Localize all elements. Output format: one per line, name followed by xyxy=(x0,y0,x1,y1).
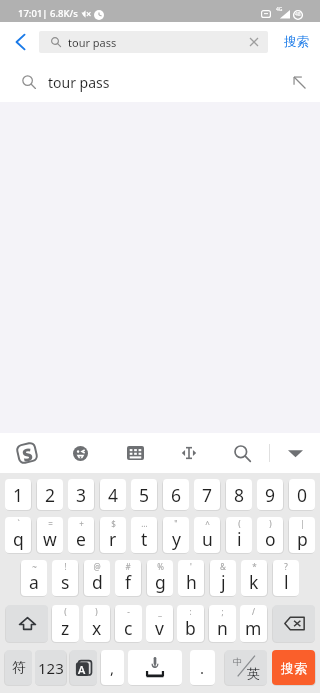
button[interactable]: Switch layout xyxy=(70,650,97,685)
button[interactable]: . xyxy=(190,650,215,685)
button[interactable]: ~ xyxy=(21,560,47,596)
button[interactable]: Keyboard layout xyxy=(117,433,153,473)
staticText: 符 xyxy=(12,659,26,676)
button[interactable]: $ xyxy=(100,517,126,553)
button[interactable]: = xyxy=(37,517,63,553)
button[interactable]: 2 xyxy=(37,479,63,510)
staticText: o xyxy=(265,527,276,551)
button[interactable]: tour pass xyxy=(39,31,268,53)
staticText: ! xyxy=(64,561,67,572)
button[interactable]: * xyxy=(241,560,267,596)
staticText: ) xyxy=(269,518,272,529)
button[interactable]: ( xyxy=(226,517,252,553)
staticText: 4 xyxy=(108,483,119,507)
button[interactable]: % xyxy=(147,560,173,596)
button[interactable]: 3 xyxy=(68,479,94,510)
staticText: 2 xyxy=(45,483,56,507)
button[interactable]: Hide keyboard xyxy=(277,433,313,473)
button[interactable]: ( xyxy=(52,605,79,642)
button[interactable]: Emoji xyxy=(62,433,98,473)
button[interactable]: Back xyxy=(2,22,38,62)
button[interactable]: 8 xyxy=(226,479,252,510)
button[interactable]: tour pass xyxy=(0,62,320,102)
button[interactable]: 0 xyxy=(289,479,315,510)
staticText: w xyxy=(43,527,57,551)
staticText: ' xyxy=(190,561,192,572)
button[interactable]: : xyxy=(177,605,204,642)
button[interactable]: - xyxy=(115,605,142,642)
button[interactable]: Clear xyxy=(244,32,264,52)
staticText: 123 xyxy=(38,658,64,678)
button[interactable]: Symbols xyxy=(5,650,32,685)
button[interactable]: 搜索 xyxy=(272,650,315,685)
staticText: tour pass xyxy=(48,73,110,92)
button[interactable]: Search xyxy=(224,433,260,473)
button[interactable]: / xyxy=(240,605,267,642)
button[interactable]: @ xyxy=(84,560,110,596)
button[interactable]: 搜索 xyxy=(272,22,320,62)
button[interactable]: & xyxy=(210,560,236,596)
staticText: ^ xyxy=(205,518,210,529)
staticText: % xyxy=(157,561,164,572)
button[interactable]: … xyxy=(131,517,157,553)
staticText: * xyxy=(252,561,257,572)
staticText: d xyxy=(92,570,103,594)
staticText: l xyxy=(284,570,289,594)
staticText: / xyxy=(252,606,255,617)
staticText: A xyxy=(78,662,86,677)
button[interactable]: ^ xyxy=(194,517,220,553)
button[interactable]: ! xyxy=(52,560,78,596)
staticText: x xyxy=(92,616,102,640)
button[interactable]: Numbers xyxy=(35,650,66,685)
button[interactable]: 6 xyxy=(163,479,189,510)
button[interactable]: ? xyxy=(273,560,299,596)
staticText: 5 xyxy=(139,483,150,507)
staticText: 6 xyxy=(171,483,182,507)
staticText: 搜索 xyxy=(281,660,307,676)
staticText: ( xyxy=(64,606,67,617)
button[interactable]: Chinese English xyxy=(225,650,267,685)
button[interactable]: , xyxy=(101,650,124,685)
staticText: $ xyxy=(111,518,116,529)
staticText: 17:01| 6.8K/s xyxy=(18,7,78,20)
staticText: h xyxy=(186,570,197,594)
staticText: y xyxy=(172,527,181,551)
staticText: ? xyxy=(284,561,288,572)
button[interactable]: ) xyxy=(83,605,110,642)
staticText: 0 xyxy=(297,483,308,507)
staticText: 8 xyxy=(234,483,245,507)
staticText: m xyxy=(245,616,262,640)
staticText: 48 xyxy=(295,11,301,18)
staticText: p xyxy=(297,527,308,551)
staticText: + xyxy=(79,518,84,529)
button[interactable]: Fill search box xyxy=(286,69,312,95)
button[interactable]: 1 xyxy=(5,479,31,510)
button[interactable]: Sogou input xyxy=(9,433,45,473)
staticText: 7 xyxy=(202,483,213,507)
button[interactable]: # xyxy=(115,560,141,596)
staticText: 中 xyxy=(233,656,242,667)
button[interactable]: Space xyxy=(128,650,182,685)
button[interactable]: 9 xyxy=(257,479,283,510)
button[interactable]: ' xyxy=(178,560,204,596)
button[interactable]: _ xyxy=(146,605,173,642)
button[interactable]: " xyxy=(163,517,189,553)
button[interactable]: Move cursor xyxy=(171,433,207,473)
button[interactable]: | xyxy=(289,517,315,553)
button[interactable]: + xyxy=(68,517,94,553)
staticText: c xyxy=(124,616,133,640)
staticText: n xyxy=(217,616,228,640)
staticText: k xyxy=(249,570,259,594)
staticText: - xyxy=(127,606,130,617)
button[interactable]: ) xyxy=(257,517,283,553)
button[interactable]: ` xyxy=(5,517,31,553)
button[interactable]: Shift xyxy=(6,605,48,642)
button[interactable]: 7 xyxy=(194,479,220,510)
button[interactable]: ; xyxy=(209,605,236,642)
button[interactable]: 5 xyxy=(131,479,157,510)
staticText: ` xyxy=(17,518,20,529)
staticText: … xyxy=(141,518,148,529)
staticText: _ xyxy=(158,606,162,617)
button[interactable]: 4 xyxy=(100,479,126,510)
button[interactable]: Delete xyxy=(273,605,315,642)
